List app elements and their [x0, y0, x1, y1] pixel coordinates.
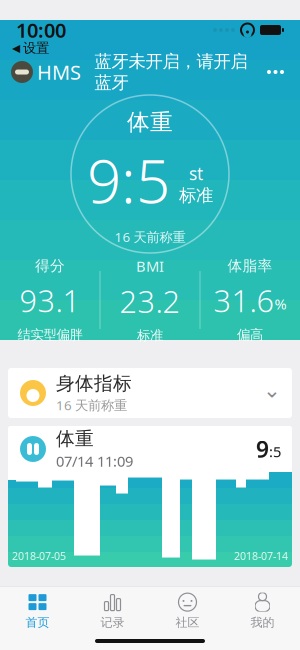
staticText: 得分: [35, 257, 65, 275]
staticText: :5: [269, 442, 281, 461]
staticText: 07/14 11:09: [56, 451, 133, 471]
staticText: 首页: [25, 615, 49, 630]
staticText: 蓝牙未开启，请开启蓝牙: [94, 51, 247, 93]
staticText: BMI: [136, 256, 164, 276]
button[interactable]: More options: [261, 62, 290, 82]
button[interactable]: 体重: [8, 426, 292, 567]
staticText: ⌄: [263, 378, 281, 402]
staticText: 设置: [23, 40, 49, 56]
staticText: 23.2: [119, 281, 180, 321]
staticText: 标准: [137, 327, 163, 344]
staticText: ◀: [12, 42, 20, 54]
staticText: 社区: [175, 615, 199, 630]
button[interactable]: 我的: [225, 587, 300, 635]
staticText: HMS: [37, 59, 81, 85]
staticText: 9: [256, 434, 269, 464]
staticText: st: [189, 162, 203, 185]
staticText: 16 天前称重: [114, 228, 185, 246]
staticText: 我的: [250, 615, 274, 630]
staticText: 体重: [56, 427, 94, 450]
button[interactable]: 首页: [0, 587, 75, 635]
button[interactable]: 身体指标: [8, 368, 292, 418]
staticText: 偏高: [237, 327, 263, 343]
staticText: 16 天前称重: [56, 396, 127, 414]
staticText: 结实型偏胖: [17, 327, 82, 343]
staticText: 93.1: [19, 280, 80, 321]
button[interactable]: ◀: [8, 39, 53, 57]
staticText: 标准: [179, 185, 213, 206]
button[interactable]: 记录: [75, 587, 150, 635]
staticText: %: [274, 294, 286, 314]
staticText: 身体指标: [56, 372, 132, 395]
staticText: 2018-07-14: [234, 549, 288, 563]
staticText: 记录: [100, 615, 124, 630]
staticText: 体脂率: [227, 257, 272, 275]
staticText: 体重: [127, 108, 173, 136]
staticText: 31.6: [213, 280, 274, 321]
staticText: 2018-07-05: [12, 549, 66, 563]
button[interactable]: HMS logo: [10, 60, 34, 84]
button[interactable]: 社区: [150, 587, 225, 635]
staticText: 10:00: [16, 17, 66, 43]
staticText: 9:5: [87, 140, 170, 220]
